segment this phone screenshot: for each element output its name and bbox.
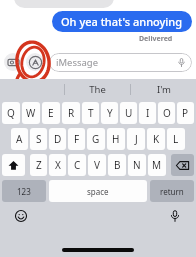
button[interactable]: E	[42, 102, 60, 124]
staticText: Oh yea that's annoying	[61, 14, 183, 29]
staticText: X	[55, 158, 61, 172]
button[interactable]: P	[177, 102, 194, 124]
staticText: T	[88, 106, 94, 120]
button[interactable]: return	[150, 180, 194, 202]
button[interactable]: F	[68, 128, 85, 150]
button[interactable]: The	[65, 79, 130, 100]
staticText: Y	[107, 106, 113, 120]
button[interactable]: J	[127, 128, 145, 150]
button[interactable]: Oh yea that's annoying	[52, 11, 192, 32]
button[interactable]: Camera	[4, 53, 22, 71]
staticText: L	[173, 132, 179, 146]
button[interactable]: I'm	[131, 79, 196, 100]
staticText: B	[114, 158, 121, 172]
button[interactable]: W	[22, 102, 40, 124]
button[interactable]: R	[62, 102, 80, 124]
staticText: G	[92, 132, 100, 146]
staticText: I	[146, 106, 150, 120]
staticText: return	[160, 186, 184, 197]
button[interactable]: Y	[101, 102, 118, 124]
button[interactable]: space	[49, 180, 147, 202]
button[interactable]: G	[87, 128, 105, 150]
staticText: D	[54, 132, 62, 146]
staticText: E	[48, 106, 54, 120]
staticText: N	[133, 158, 141, 172]
button[interactable]: D	[49, 128, 66, 150]
button[interactable]: App Store	[26, 53, 44, 71]
button[interactable]: X	[49, 154, 66, 176]
staticText: V	[94, 158, 100, 172]
button[interactable]: C	[68, 154, 86, 176]
button[interactable]: Emoji	[14, 209, 28, 223]
button[interactable]: Dictation	[168, 209, 182, 223]
button[interactable]: V	[88, 154, 106, 176]
staticText: Delivered	[139, 34, 173, 44]
staticText: F	[74, 132, 80, 146]
staticText: S	[36, 132, 42, 146]
staticText: A	[16, 132, 23, 146]
button[interactable]: Q	[2, 102, 20, 124]
staticText: W	[26, 106, 36, 120]
staticText: iMessage	[56, 56, 99, 69]
staticText: O	[163, 106, 171, 120]
button[interactable]: S	[30, 128, 47, 150]
button[interactable]: T	[82, 102, 99, 124]
button[interactable]: N	[128, 154, 146, 176]
button[interactable]: L	[167, 128, 185, 150]
staticText: U	[125, 106, 133, 120]
staticText: K	[153, 132, 160, 146]
staticText: M	[152, 158, 162, 172]
staticText: P	[182, 106, 189, 120]
button[interactable]: 123	[2, 180, 46, 202]
staticText: space	[87, 186, 109, 197]
button[interactable]: Backspace	[171, 154, 194, 176]
button[interactable]: U	[120, 102, 137, 124]
button[interactable]: O	[158, 102, 175, 124]
staticText: I'm	[157, 83, 171, 96]
button[interactable]: H	[107, 128, 125, 150]
staticText: 123	[17, 186, 31, 197]
staticText: C	[74, 158, 81, 172]
button[interactable]: Z	[30, 154, 47, 176]
staticText: Z	[36, 158, 42, 172]
button[interactable]: iMessage	[49, 53, 192, 72]
button[interactable]: K	[147, 128, 165, 150]
button[interactable]: Shift	[2, 154, 25, 176]
button[interactable]: A	[11, 128, 28, 150]
other: Dictate	[176, 57, 187, 68]
staticText: H	[112, 132, 120, 146]
staticText: Q	[7, 106, 15, 120]
button[interactable]: B	[108, 154, 126, 176]
staticText: R	[68, 106, 75, 120]
button[interactable]: M	[148, 154, 166, 176]
staticText: The	[89, 83, 106, 96]
button[interactable]: I	[139, 102, 156, 124]
staticText: J	[135, 132, 138, 146]
